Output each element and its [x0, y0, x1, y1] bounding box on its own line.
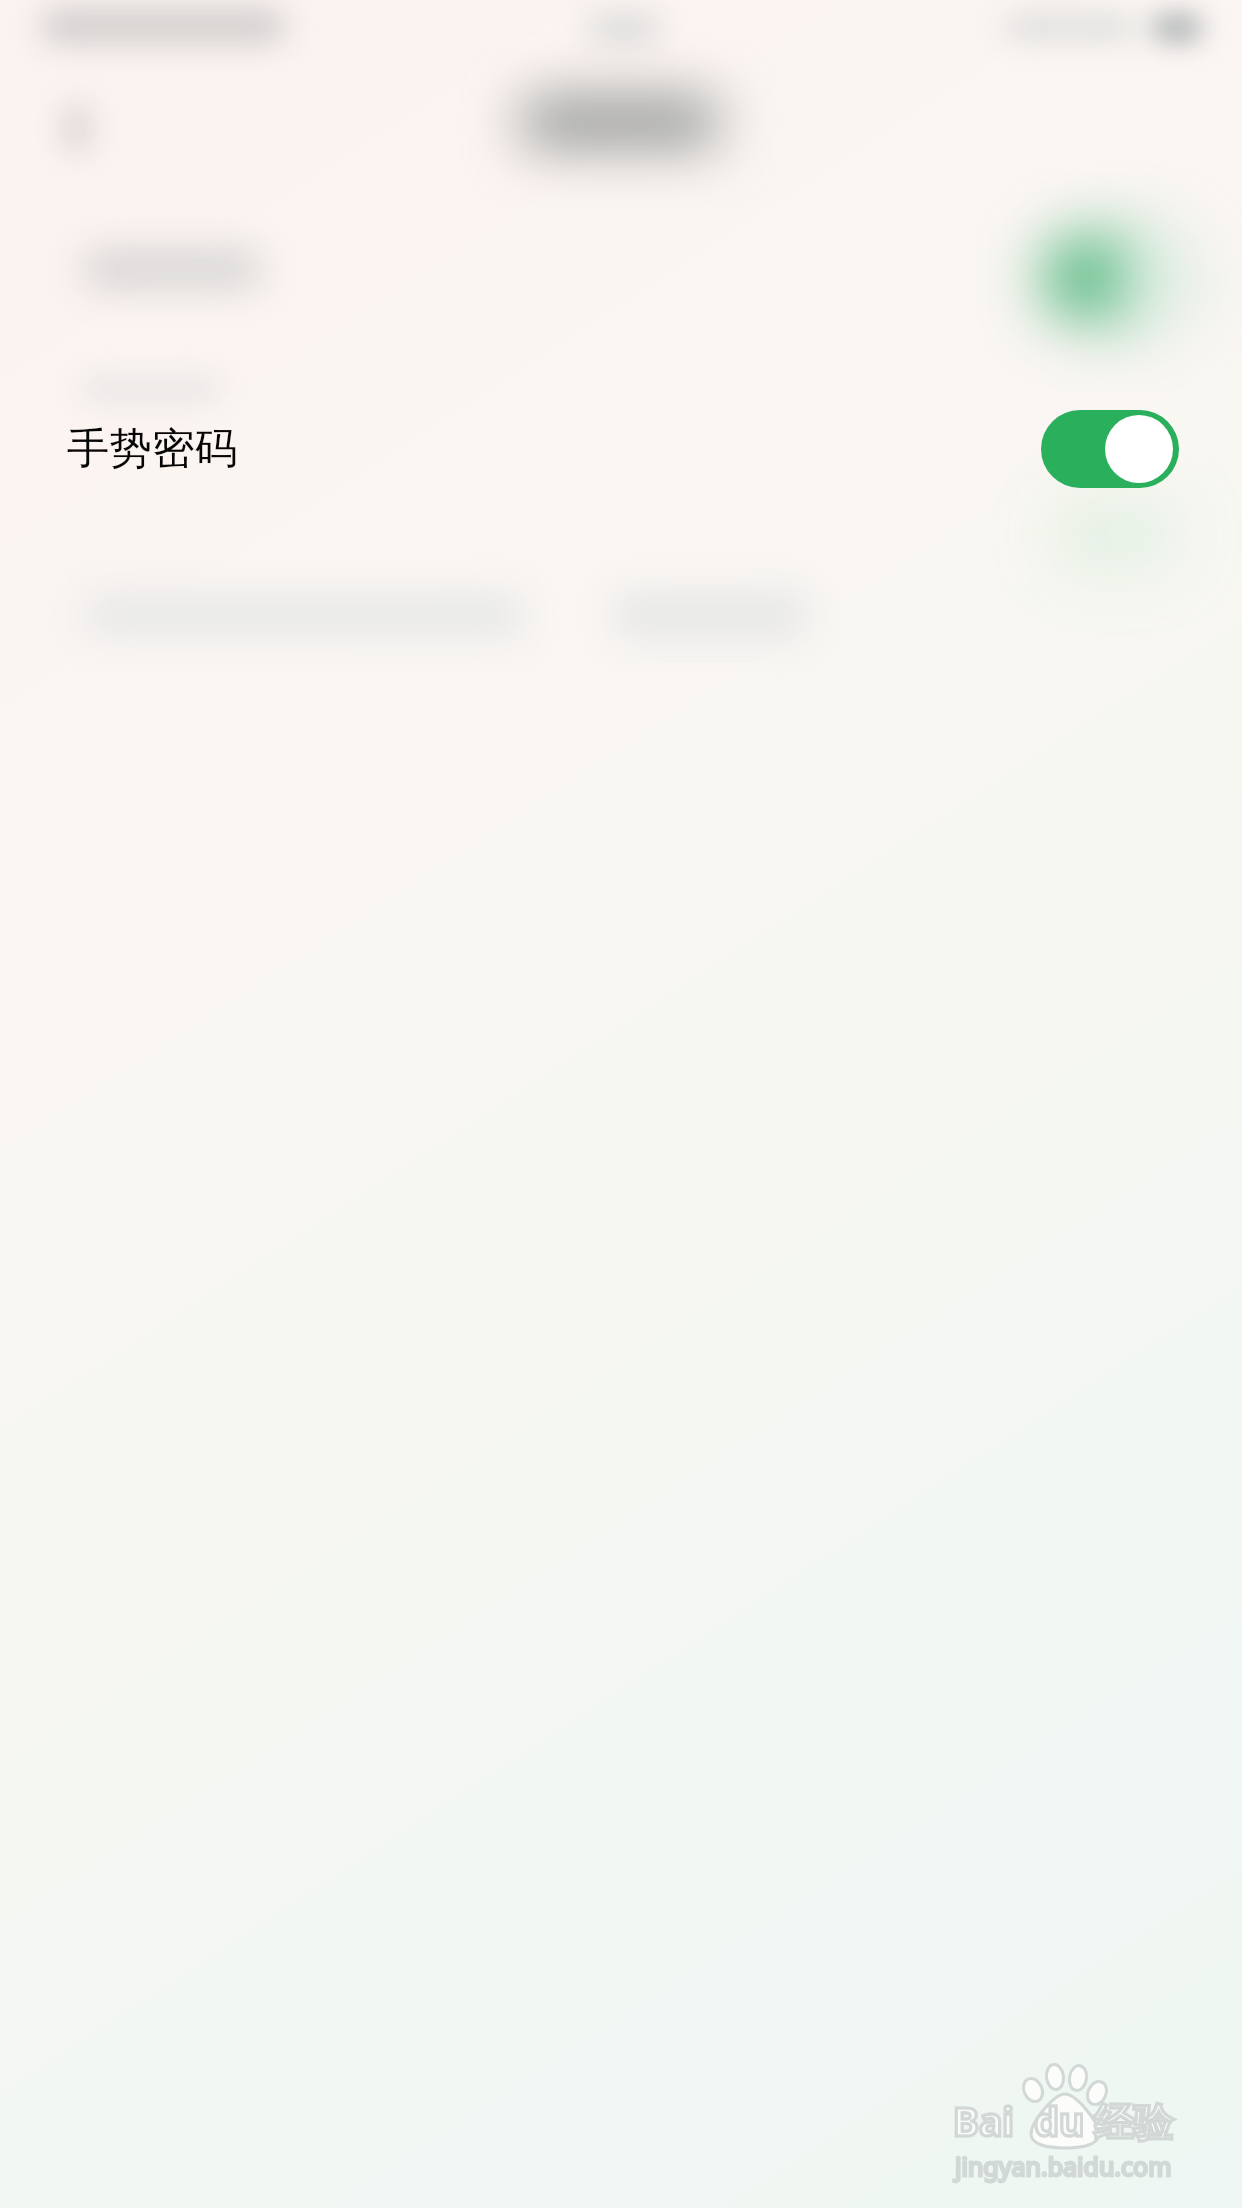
staticText: Bai du 经验: [953, 2094, 1173, 2147]
staticText: jingyan.baidu.com: [955, 2149, 1172, 2183]
staticText: jingyan.baidu.com: [955, 2149, 1172, 2183]
staticText: Bai du 经验: [953, 2094, 1173, 2147]
button[interactable]: Toggle gesture password: [1041, 410, 1179, 488]
button[interactable]: Toggle fingerprint unlock: [0, 205, 1242, 345]
staticText: 手势密码: [67, 422, 237, 476]
button[interactable]: Toggle fingerprint unlock: [1041, 236, 1179, 314]
button[interactable]: 手势密码: [0, 379, 1242, 519]
button[interactable]: Back: [24, 72, 136, 184]
